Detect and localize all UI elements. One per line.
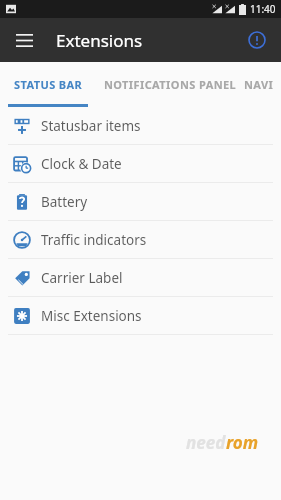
button[interactable]: Battery (0, 183, 281, 220)
staticText: Extensions (56, 29, 143, 52)
button[interactable]: Clock & Date (0, 145, 281, 182)
button[interactable]: Traffic indicators (0, 221, 281, 258)
button[interactable]: STATUS BAR (0, 62, 96, 107)
staticText: Statusbar items (41, 117, 141, 135)
staticText: STATUS BAR (14, 77, 83, 92)
staticText: Carrier Label (41, 269, 123, 287)
staticText: need (186, 431, 226, 454)
button[interactable]: Statusbar items (0, 107, 281, 144)
staticText: Clock & Date (41, 155, 122, 173)
button[interactable]: NAVIGA (244, 62, 281, 107)
button[interactable]: Carrier Label (0, 259, 281, 296)
staticText: NAVIGA (244, 77, 281, 92)
button[interactable]: Misc Extensions (0, 297, 281, 334)
button[interactable]: About (241, 24, 273, 56)
staticText: 11:40 (250, 2, 276, 16)
button[interactable]: Open navigation menu (8, 24, 40, 56)
staticText: rom (226, 431, 259, 454)
staticText: NOTIFICATIONS PANEL (104, 77, 237, 92)
button[interactable]: NOTIFICATIONS PANEL (96, 62, 244, 107)
staticText: Battery (41, 193, 88, 211)
staticText: Misc Extensions (41, 307, 142, 325)
staticText: Traffic indicators (41, 231, 147, 249)
